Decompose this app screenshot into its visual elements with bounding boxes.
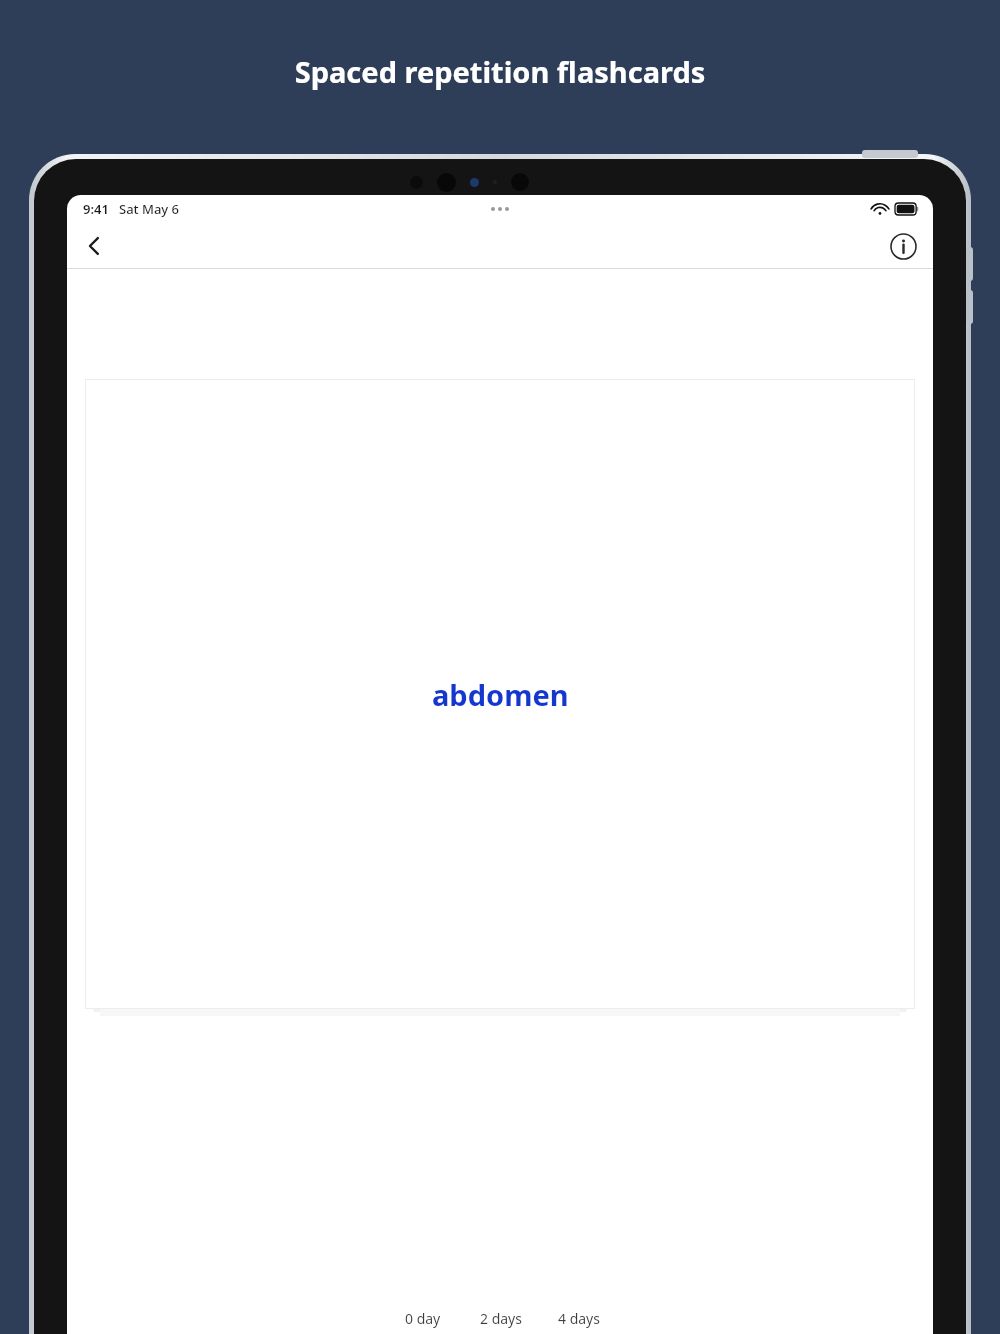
button[interactable]: Info — [883, 226, 923, 266]
staticText: 2 days — [480, 1309, 522, 1328]
button[interactable]: Back — [73, 225, 115, 267]
staticText: Sat May 6 — [119, 200, 179, 218]
staticText: 0 day — [405, 1309, 441, 1328]
button[interactable]: abdomen — [85, 379, 915, 1009]
staticText: 4 days — [558, 1309, 600, 1328]
staticText: Spaced repetition flashcards — [0, 52, 1000, 91]
staticText: 9:41 — [83, 200, 109, 218]
staticText: abdomen — [432, 675, 569, 714]
